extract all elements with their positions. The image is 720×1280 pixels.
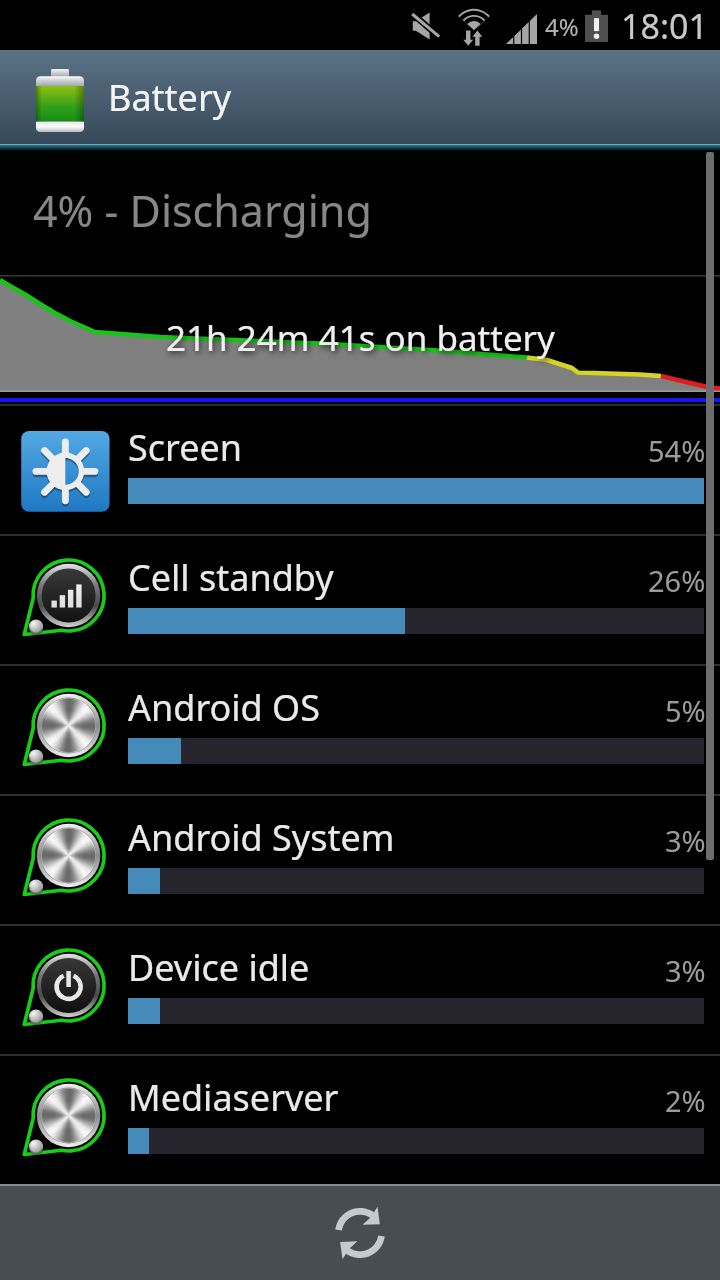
staticText: 5% bbox=[665, 691, 706, 730]
staticText: 4% bbox=[545, 10, 579, 43]
staticText: Screen bbox=[128, 423, 243, 472]
button[interactable]: Refresh bbox=[305, 1186, 415, 1280]
button[interactable]: Battery bbox=[0, 50, 720, 144]
button[interactable]: Cell standby bbox=[0, 535, 720, 665]
staticText: 54% bbox=[648, 431, 706, 470]
staticText: Android System bbox=[128, 813, 395, 862]
staticText: 3% bbox=[665, 821, 706, 860]
button[interactable]: Android OS bbox=[0, 665, 720, 795]
button[interactable]: Android System bbox=[0, 795, 720, 925]
staticText: Android OS bbox=[128, 683, 320, 732]
staticText: Device idle bbox=[128, 943, 310, 992]
button[interactable]: Device idle bbox=[0, 925, 720, 1055]
staticText: 3% bbox=[665, 951, 706, 990]
staticText: 4% - Discharging bbox=[33, 181, 372, 240]
button[interactable]: Screen bbox=[0, 405, 720, 535]
staticText: Mediaserver bbox=[128, 1073, 339, 1122]
staticText: 2% bbox=[665, 1081, 706, 1120]
staticText: Battery bbox=[108, 73, 232, 122]
button[interactable]: Mediaserver bbox=[0, 1055, 720, 1185]
staticText: Cell standby bbox=[128, 553, 334, 602]
staticText: 21h 24m 41s on battery bbox=[166, 314, 555, 362]
staticText: 18:01 bbox=[621, 3, 708, 49]
staticText: 26% bbox=[648, 561, 706, 600]
